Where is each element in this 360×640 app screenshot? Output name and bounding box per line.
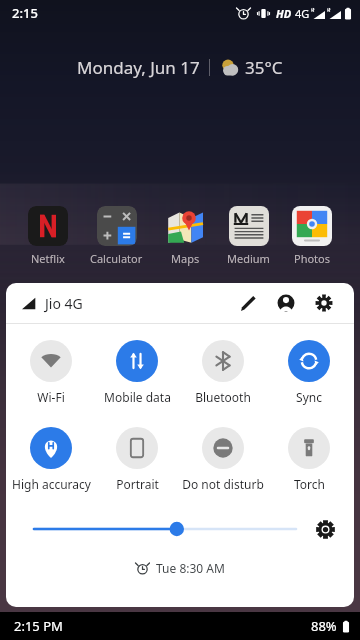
button[interactable]: Brightness slider xyxy=(34,514,296,544)
button[interactable]: User account xyxy=(270,287,302,319)
staticText: Tue 8:30 AM xyxy=(156,560,225,576)
button[interactable]: Maps xyxy=(165,206,205,266)
staticText: Do not disturb xyxy=(182,476,264,492)
button[interactable]: Do not disturb xyxy=(182,427,264,492)
staticText: 2:15 xyxy=(12,4,38,22)
staticText: Sync xyxy=(296,389,322,405)
staticText: Torch xyxy=(294,476,325,492)
button[interactable]: Photos xyxy=(292,206,332,266)
staticText: Maps xyxy=(171,251,200,266)
staticText: Photos xyxy=(294,251,331,266)
staticText: Mobile data xyxy=(104,389,171,405)
staticText: HD xyxy=(276,6,292,21)
button[interactable]: Calculator xyxy=(90,206,143,266)
staticText: Jio 4G xyxy=(45,294,83,313)
button[interactable]: Netflix xyxy=(28,206,68,266)
staticText: 88% xyxy=(311,617,337,635)
staticText: 4G xyxy=(295,6,310,21)
button[interactable]: Portrait xyxy=(96,427,178,492)
button[interactable]: Wi-Fi xyxy=(10,340,92,405)
button[interactable]: Torch xyxy=(268,427,350,492)
staticText: Portrait xyxy=(116,476,159,492)
staticText: Wi-Fi xyxy=(37,389,65,405)
button[interactable]: Tue 8:30 AM xyxy=(6,556,354,580)
staticText: 35°C xyxy=(245,56,283,79)
button[interactable]: Edit tiles xyxy=(232,287,264,319)
button[interactable]: Auto brightness xyxy=(310,514,340,544)
button[interactable]: Sync xyxy=(268,340,350,405)
staticText: Bluetooth xyxy=(195,389,251,405)
staticText: Netflix xyxy=(31,251,65,266)
staticText: Calculator xyxy=(90,251,143,266)
staticText: 2:15 PM xyxy=(14,617,63,635)
button[interactable]: Bluetooth xyxy=(182,340,264,405)
button[interactable]: High accuracy xyxy=(10,427,92,492)
button[interactable]: Mobile data xyxy=(96,340,178,405)
staticText: High accuracy xyxy=(12,476,91,492)
staticText: Medium xyxy=(227,251,270,266)
button[interactable]: Medium xyxy=(227,206,270,266)
button[interactable]: Settings xyxy=(308,287,340,319)
staticText: Monday, Jun 17 xyxy=(77,56,200,79)
